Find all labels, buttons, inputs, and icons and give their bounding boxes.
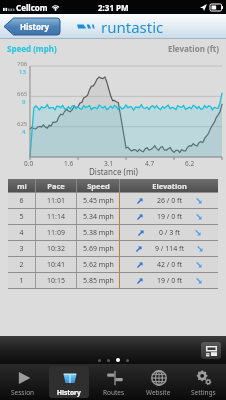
staticText: History: [57, 388, 81, 397]
button[interactable]: 4: [8, 225, 218, 240]
staticText: 5.85 mph: [83, 276, 114, 286]
staticText: Website: [146, 388, 171, 397]
staticText: Routes: [103, 388, 125, 397]
button[interactable]: Routes: [91, 364, 136, 400]
button[interactable]: 3: [8, 241, 218, 256]
staticText: 26 / 0 ft: [157, 196, 183, 206]
staticText: Pace: [47, 181, 65, 191]
staticText: 0 / 3 ft: [159, 228, 181, 238]
staticText: 10:15: [47, 276, 65, 286]
staticText: 19 / 0 ft: [157, 276, 183, 286]
staticText: 4: [19, 228, 24, 238]
staticText: 5.45 mph: [83, 196, 114, 206]
button[interactable]: 5: [8, 209, 218, 224]
staticText: 10:41: [47, 260, 65, 270]
staticText: 4.7: [145, 159, 155, 168]
staticText: Cellcom: [16, 2, 48, 13]
staticText: mi: [17, 181, 27, 191]
staticText: 6.2: [185, 159, 195, 168]
staticText: Elevation (ft): [168, 43, 219, 54]
button[interactable]: Show chart: [201, 342, 221, 359]
staticText: 11:09: [47, 228, 65, 238]
staticText: 9 / 114 ft: [155, 244, 185, 254]
button[interactable]: 6: [8, 193, 218, 208]
staticText: 10:32: [47, 244, 65, 254]
staticText: 5.62 mph: [83, 260, 114, 270]
staticText: 11:14: [47, 212, 65, 222]
staticText: Distance (mi): [89, 166, 138, 176]
staticText: Speed (mph): [7, 43, 57, 54]
staticText: 5.34 mph: [83, 212, 114, 222]
button[interactable]: 2: [8, 257, 218, 272]
staticText: 3: [19, 244, 24, 254]
button[interactable]: 1: [8, 273, 218, 288]
staticText: 5: [19, 212, 24, 222]
staticText: 625: [17, 120, 28, 128]
staticText: 1: [19, 276, 24, 286]
button[interactable]: Settings: [181, 364, 226, 400]
staticText: 5.69 mph: [83, 244, 114, 254]
staticText: 42 / 0 ft: [157, 260, 183, 270]
staticText: 2:31 PM: [98, 2, 129, 13]
staticText: 1.6: [64, 159, 74, 168]
staticText: 2: [19, 260, 24, 270]
staticText: 3.1: [104, 159, 114, 168]
button[interactable]: History: [46, 364, 91, 400]
staticText: 4: [22, 128, 26, 136]
staticText: Settings: [191, 388, 216, 397]
staticText: History: [20, 21, 50, 32]
staticText: runtastic: [101, 17, 164, 37]
staticText: Session: [11, 388, 35, 397]
staticText: Speed: [87, 181, 110, 191]
staticText: 6: [19, 196, 24, 206]
button[interactable]: Session: [0, 364, 46, 400]
button[interactable]: History: [4, 18, 60, 35]
staticText: 706: [17, 60, 28, 68]
staticText: 665: [17, 90, 28, 98]
staticText: 9: [22, 98, 26, 106]
staticText: 5.38 mph: [83, 228, 114, 238]
staticText: 11:01: [47, 196, 65, 206]
button[interactable]: Website: [136, 364, 181, 400]
staticText: Elevation: [152, 181, 187, 191]
staticText: 19 / 0 ft: [157, 212, 183, 222]
staticText: 13: [19, 68, 26, 76]
staticText: 0.0: [24, 159, 34, 168]
